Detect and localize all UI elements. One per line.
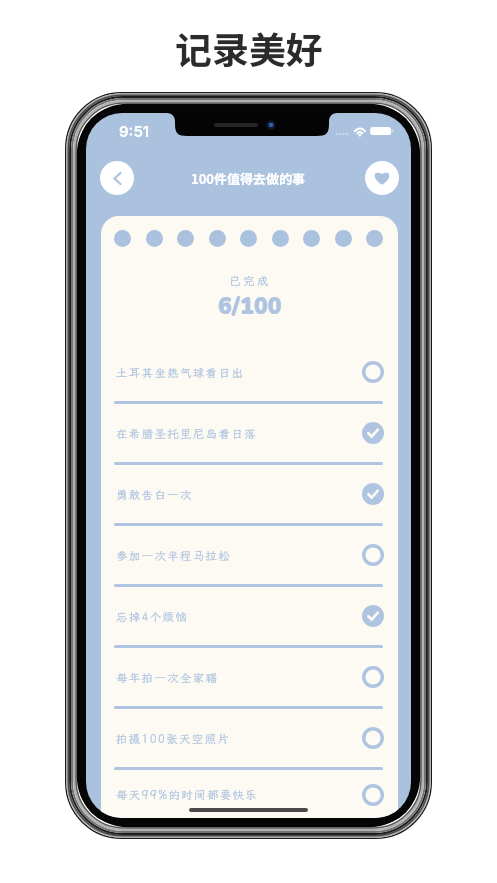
button[interactable]: 参加一次半程马拉松	[101, 527, 398, 588]
staticText: 土耳其坐热气球看日出	[116, 365, 362, 380]
staticText: 忘掉4个烦恼	[116, 609, 362, 624]
button[interactable]: 土耳其坐热气球看日出	[101, 344, 398, 405]
staticText: 6/100	[218, 291, 282, 322]
staticText: 拍摄100张天空照片	[116, 731, 362, 746]
button[interactable]: 每年拍一次全家福	[101, 649, 398, 710]
staticText: 参加一次半程马拉松	[116, 548, 362, 563]
button[interactable]: 拍摄100张天空照片	[101, 710, 398, 771]
button[interactable]: 在希腊圣托里尼岛看日落	[101, 405, 398, 466]
button[interactable]: 勇敢告白一次	[101, 466, 398, 527]
staticText: 记录美好	[175, 21, 323, 75]
staticText: 在希腊圣托里尼岛看日落	[116, 426, 362, 441]
button[interactable]: 忘掉4个烦恼	[101, 588, 398, 649]
staticText: 100件值得去做的事	[191, 169, 306, 188]
button[interactable]: Back	[100, 161, 134, 195]
staticText: 已完成	[229, 273, 271, 288]
staticText: 每年拍一次全家福	[116, 670, 362, 685]
staticText: 9:51	[119, 122, 150, 140]
button[interactable]: 每天99%的时间都要快乐	[101, 771, 398, 818]
staticText: 勇敢告白一次	[116, 487, 362, 502]
button[interactable]: Favorite	[365, 161, 399, 195]
staticText: 每天99%的时间都要快乐	[116, 787, 362, 802]
